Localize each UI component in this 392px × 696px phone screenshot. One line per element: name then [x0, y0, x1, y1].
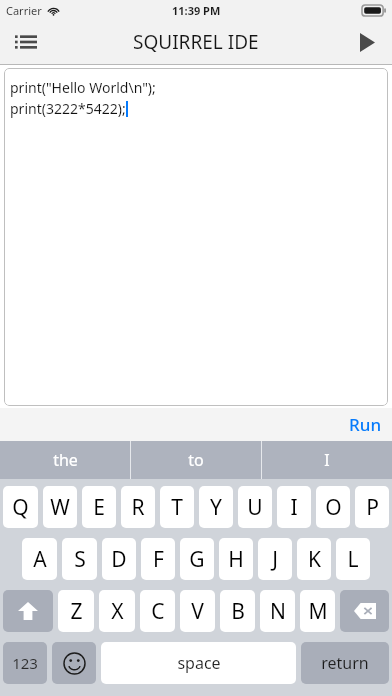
button[interactable]: Emoji: [52, 642, 96, 684]
button[interactable]: K: [297, 538, 331, 580]
staticText: the: [53, 449, 78, 471]
button[interactable]: E: [82, 486, 116, 528]
button[interactable]: I: [277, 486, 311, 528]
staticText: I: [324, 449, 330, 471]
staticText: U: [247, 493, 263, 522]
staticText: E: [93, 493, 105, 522]
staticText: 123: [12, 653, 38, 673]
button[interactable]: C: [140, 590, 175, 632]
button[interactable]: V: [180, 590, 215, 632]
button[interactable]: F: [141, 538, 175, 580]
button[interactable]: O: [316, 486, 350, 528]
button[interactable]: Shift: [3, 590, 53, 632]
button[interactable]: X: [99, 590, 135, 632]
button[interactable]: B: [220, 590, 255, 632]
staticText: V: [191, 597, 204, 626]
button[interactable]: Run script: [342, 20, 392, 64]
staticText: Run: [349, 413, 382, 436]
button[interactable]: H: [219, 538, 253, 580]
staticText: Z: [70, 597, 83, 626]
button[interactable]: G: [180, 538, 214, 580]
button[interactable]: 123: [3, 642, 47, 684]
button[interactable]: Run: [339, 408, 392, 441]
button[interactable]: A: [22, 538, 57, 580]
staticText: L: [347, 545, 359, 574]
button[interactable]: J: [258, 538, 292, 580]
staticText: N: [270, 597, 286, 626]
button[interactable]: the: [0, 441, 130, 479]
staticText: 11:39 PM: [172, 3, 221, 18]
staticText: S: [74, 545, 86, 574]
staticText: O: [325, 493, 342, 522]
staticText: Y: [210, 493, 222, 522]
staticText: B: [231, 597, 245, 626]
staticText: P: [366, 493, 379, 522]
staticText: return: [321, 652, 369, 674]
staticText: G: [189, 545, 205, 574]
button[interactable]: W: [43, 486, 77, 528]
staticText: print("Hello World\n");: [10, 78, 156, 97]
button[interactable]: Backspace: [340, 590, 389, 632]
staticText: X: [111, 597, 124, 626]
button[interactable]: U: [238, 486, 272, 528]
button[interactable]: L: [336, 538, 370, 580]
staticText: Q: [12, 493, 29, 522]
staticText: Carrier: [6, 3, 42, 18]
button[interactable]: N: [260, 590, 295, 632]
staticText: K: [308, 545, 321, 574]
button[interactable]: Z: [58, 590, 94, 632]
staticText: R: [131, 493, 145, 522]
staticText: D: [111, 545, 127, 574]
button[interactable]: to: [131, 441, 261, 479]
staticText: C: [151, 597, 165, 626]
button[interactable]: P: [355, 486, 389, 528]
button[interactable]: M: [300, 590, 335, 632]
button[interactable]: Y: [199, 486, 233, 528]
staticText: M: [308, 597, 328, 626]
staticText: F: [153, 545, 164, 574]
staticText: T: [171, 493, 183, 522]
staticText: W: [50, 493, 70, 522]
button[interactable]: S: [62, 538, 97, 580]
staticText: to: [188, 449, 204, 471]
button[interactable]: space: [101, 642, 296, 684]
button[interactable]: Q: [3, 486, 38, 528]
staticText: A: [33, 545, 47, 574]
staticText: print(3222*5422);: [10, 99, 126, 118]
staticText: space: [177, 652, 221, 674]
button[interactable]: print("Hello World\n");: [4, 68, 388, 406]
button[interactable]: T: [160, 486, 194, 528]
button[interactable]: I: [262, 441, 392, 479]
button[interactable]: Menu: [0, 20, 52, 64]
staticText: H: [228, 545, 244, 574]
staticText: I: [290, 493, 298, 522]
button[interactable]: return: [301, 642, 389, 684]
staticText: J: [272, 545, 278, 574]
button[interactable]: R: [121, 486, 155, 528]
staticText: SQUIRREL IDE: [133, 29, 259, 55]
button[interactable]: D: [102, 538, 136, 580]
